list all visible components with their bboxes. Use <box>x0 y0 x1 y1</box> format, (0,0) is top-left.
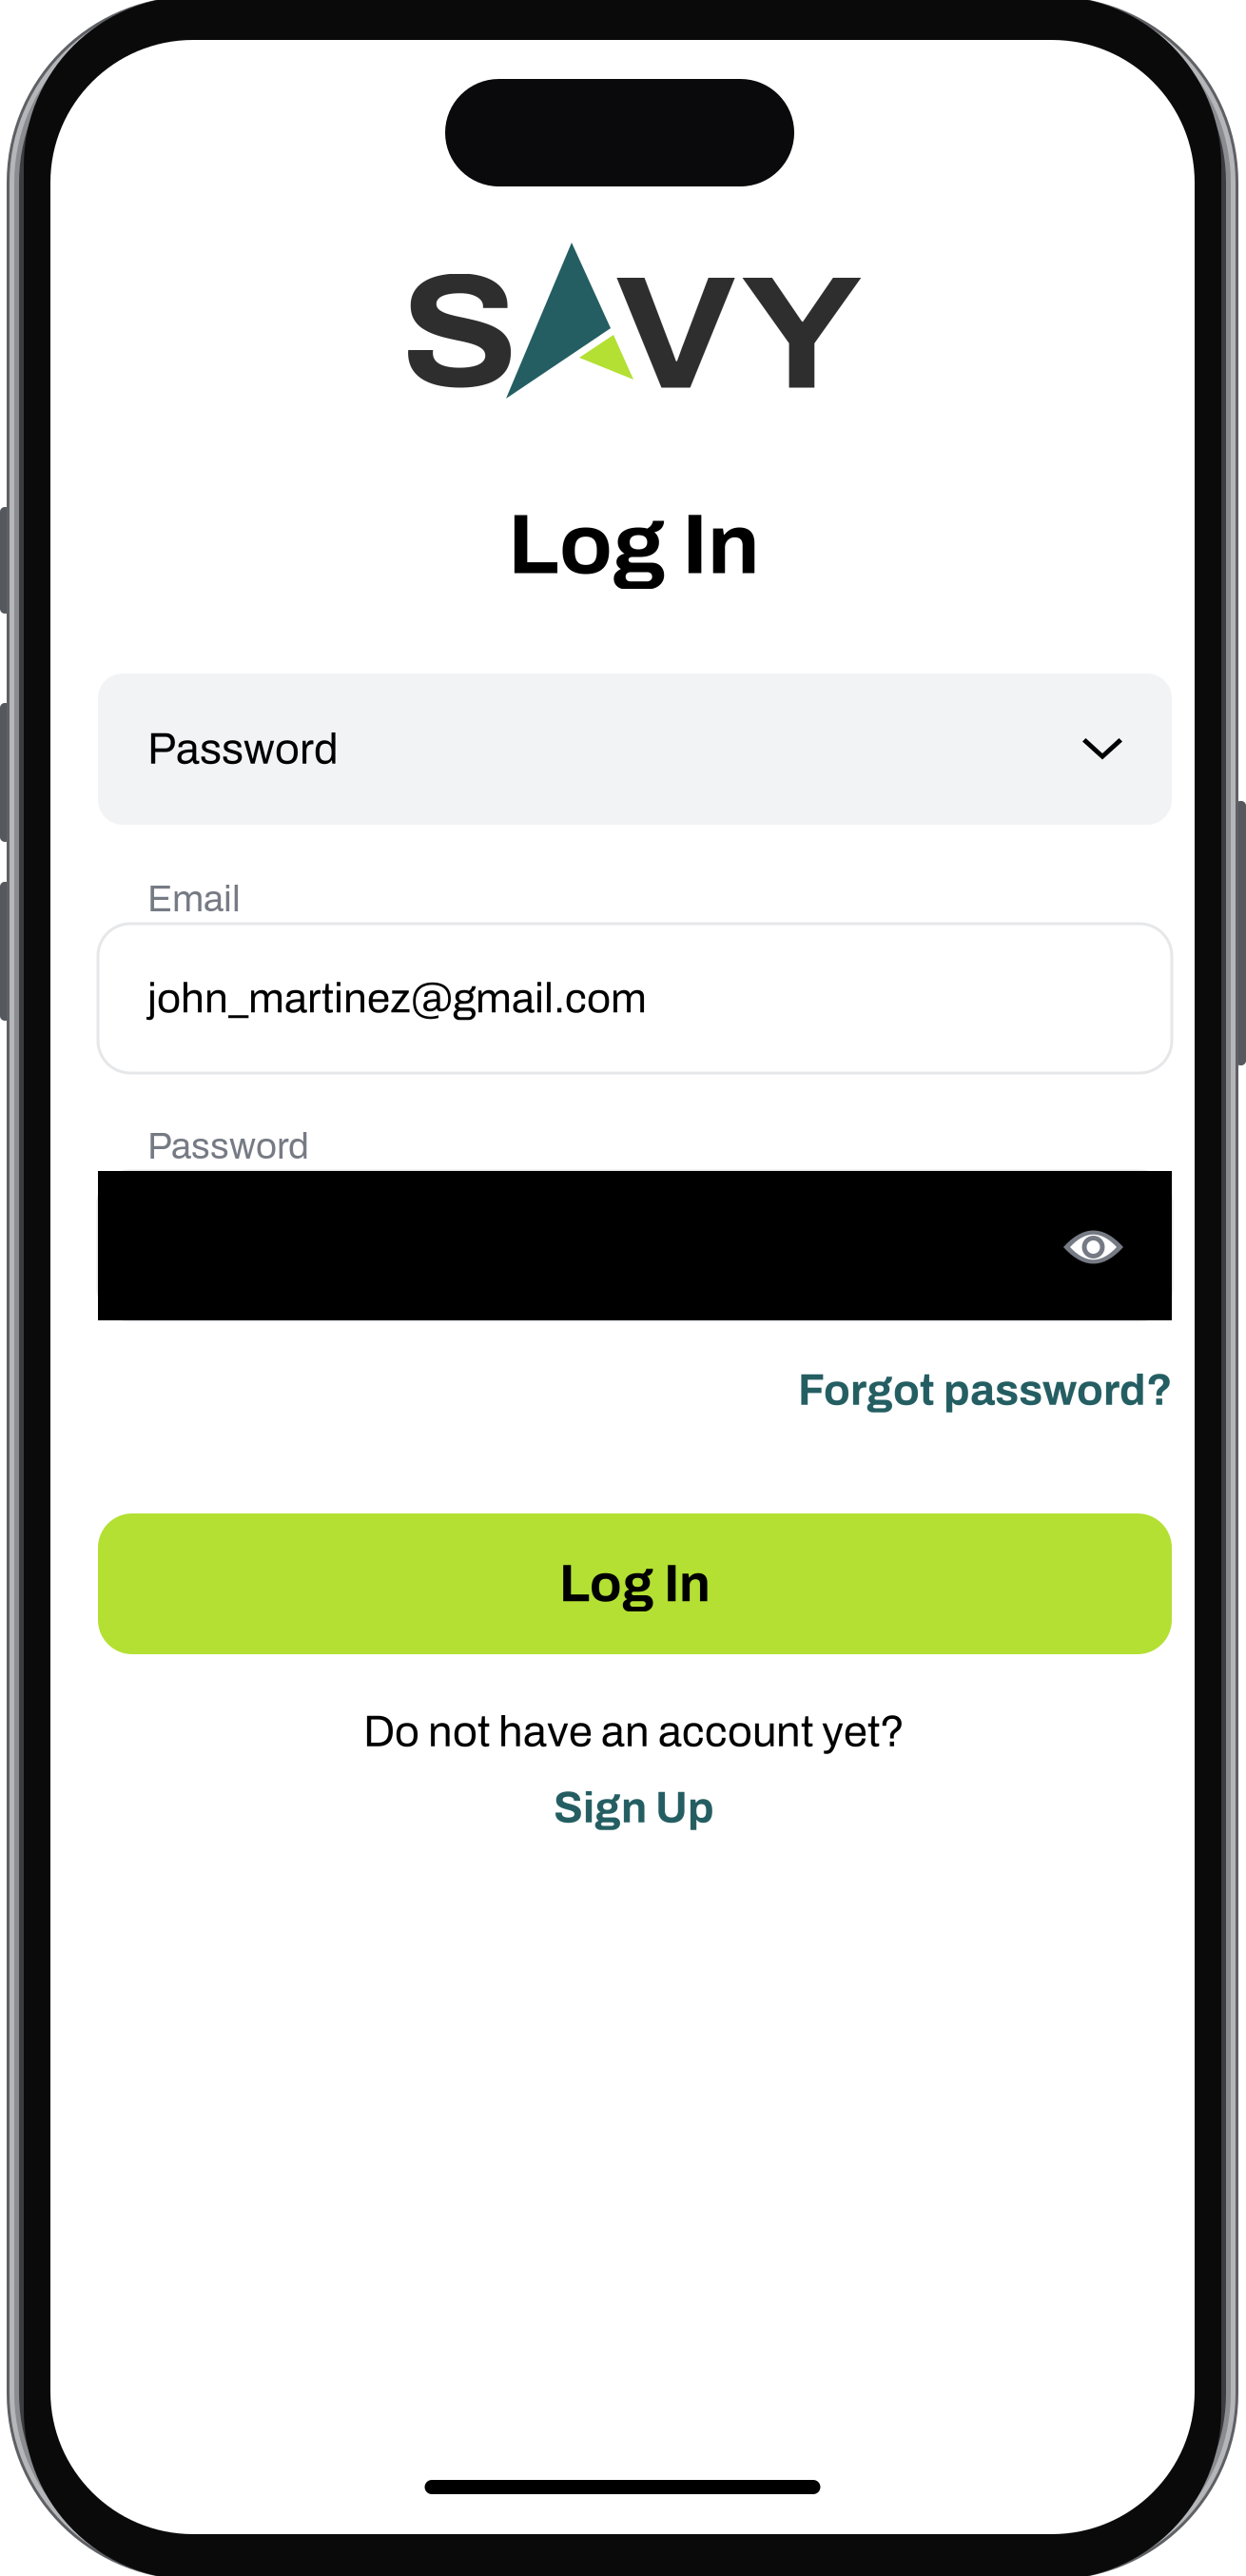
staticText: Sign Up <box>554 1785 714 1831</box>
staticText: Log In <box>508 498 760 591</box>
staticText: Forgot password? <box>798 1367 1173 1414</box>
staticText: V <box>614 247 737 421</box>
staticText: Do not have an account yet? <box>363 1708 905 1755</box>
staticText: Y <box>740 247 864 421</box>
staticText: Password <box>147 1126 309 1166</box>
button[interactable]: Sign Up <box>62 1785 1206 1831</box>
button[interactable]: Password <box>98 673 1172 825</box>
staticText: S <box>400 245 518 419</box>
button[interactable]: Forgot password? <box>99 1367 1173 1414</box>
staticText: john_martinez@gmail.com <box>147 976 647 1021</box>
button[interactable]: Log In <box>98 1513 1172 1654</box>
staticText: Log In <box>559 1556 711 1612</box>
staticText: Email <box>147 879 241 919</box>
staticText: Password <box>147 726 339 773</box>
